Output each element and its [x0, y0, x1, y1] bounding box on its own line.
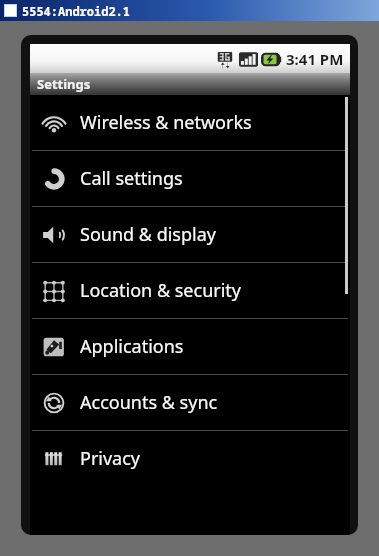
staticText: Settings: [37, 75, 91, 93]
button[interactable]: Accounts & sync: [30, 375, 350, 430]
button[interactable]: Sound & display: [30, 207, 350, 262]
staticText: 5554:Android2.1: [22, 3, 131, 19]
button[interactable]: Privacy: [30, 431, 350, 486]
button[interactable]: Call settings: [30, 151, 350, 206]
staticText: Accounts & sync: [80, 390, 218, 415]
button[interactable]: Applications: [30, 319, 350, 374]
staticText: Privacy: [80, 446, 141, 471]
staticText: 3:41 PM: [286, 49, 344, 69]
button[interactable]: Location & security: [30, 263, 350, 318]
staticText: Wireless & networks: [80, 110, 252, 135]
staticText: Location & security: [80, 278, 242, 303]
staticText: Applications: [80, 334, 184, 359]
staticText: Sound & display: [80, 222, 216, 247]
staticText: Call settings: [80, 166, 183, 191]
button[interactable]: Wireless & networks: [30, 95, 350, 150]
